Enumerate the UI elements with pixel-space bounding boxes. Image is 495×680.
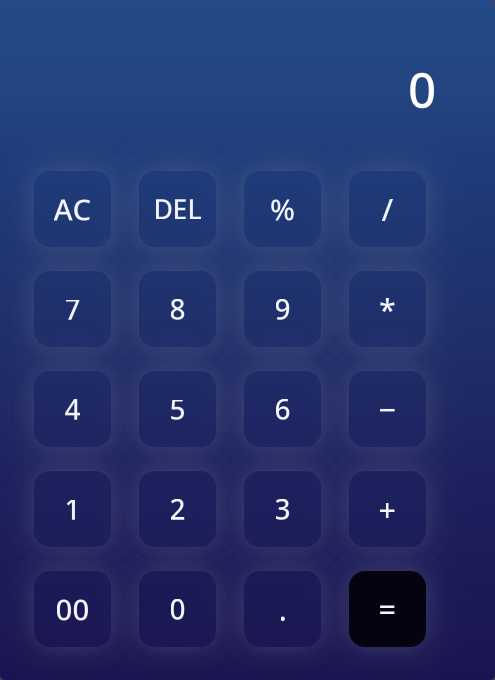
button[interactable]: 1 — [34, 471, 111, 547]
staticText: . — [278, 589, 286, 629]
staticText: DEL — [153, 191, 201, 227]
staticText: + — [378, 489, 396, 529]
staticText: * — [379, 289, 396, 329]
staticText: 1 — [64, 490, 80, 528]
button[interactable]: 7 — [34, 271, 111, 347]
button[interactable]: Delete — [139, 171, 216, 247]
staticText: 8 — [169, 290, 185, 328]
button[interactable]: 4 — [34, 371, 111, 447]
button[interactable]: 8 — [139, 271, 216, 347]
staticText: 9 — [274, 290, 290, 328]
button[interactable]: Minus — [349, 371, 426, 447]
staticText: 0 — [408, 56, 436, 122]
button[interactable]: 6 — [244, 371, 321, 447]
staticText: 6 — [274, 390, 290, 428]
staticText: − — [378, 389, 396, 429]
staticText: 4 — [64, 390, 80, 428]
button[interactable]: Divide — [349, 171, 426, 247]
button[interactable]: 5 — [139, 371, 216, 447]
button[interactable]: Multiply — [349, 271, 426, 347]
button[interactable]: 9 — [244, 271, 321, 347]
staticText: 7 — [64, 290, 80, 328]
staticText: % — [270, 189, 295, 228]
staticText: = — [378, 589, 396, 629]
staticText: 3 — [274, 490, 290, 528]
staticText: / — [381, 189, 393, 229]
button[interactable]: All clear — [34, 171, 111, 247]
staticText: 5 — [169, 390, 185, 428]
button[interactable]: Equals — [349, 571, 426, 647]
button[interactable]: 00 — [34, 571, 111, 647]
staticText: 00 — [55, 589, 89, 628]
button[interactable]: Percent — [244, 171, 321, 247]
button[interactable]: 3 — [244, 471, 321, 547]
button[interactable]: Plus — [349, 471, 426, 547]
button[interactable]: Decimal point — [244, 571, 321, 647]
button[interactable]: 0 — [139, 571, 216, 647]
button[interactable]: 2 — [139, 471, 216, 547]
staticText: 0 — [169, 590, 185, 628]
staticText: 2 — [169, 490, 185, 528]
staticText: AC — [53, 189, 91, 228]
